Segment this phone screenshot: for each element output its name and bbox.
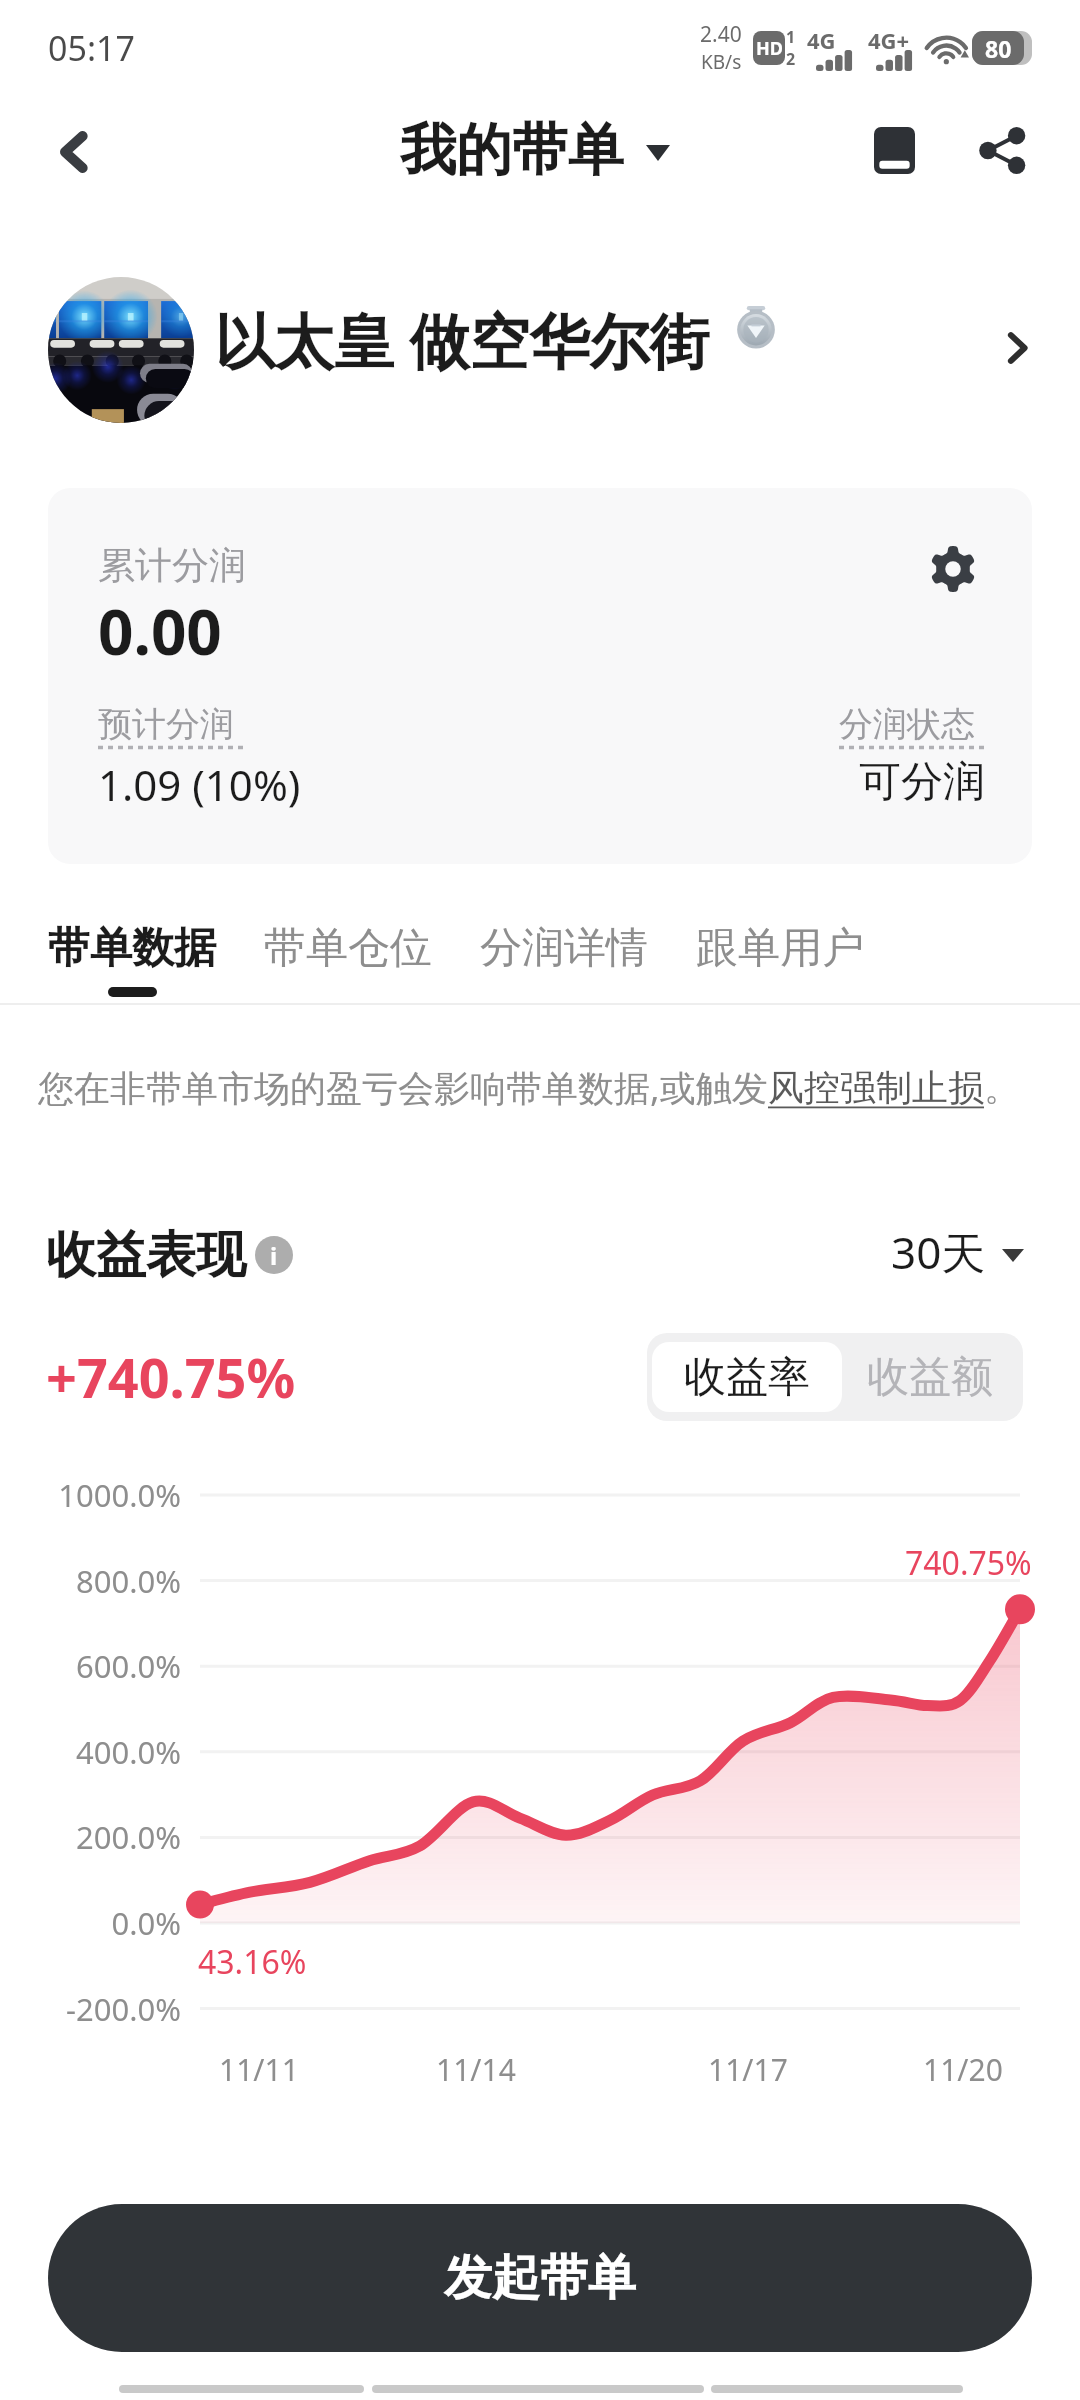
button[interactable]: 分润详情: [476, 922, 652, 997]
staticText: 05:17: [48, 25, 135, 71]
staticText: 0.00: [98, 589, 222, 673]
staticText: 740.75%: [905, 1541, 1032, 1585]
button[interactable]: 收益额: [842, 1342, 1018, 1412]
staticText: 收益率: [684, 1351, 810, 1404]
staticText: 累计分润: [98, 542, 246, 589]
staticText: 4G: [807, 25, 836, 55]
button[interactable]: Notes: [852, 108, 936, 192]
staticText: KB/s: [701, 49, 742, 75]
staticText: 80: [985, 33, 1012, 64]
staticText: HD: [756, 36, 783, 61]
button[interactable]: Settings: [907, 523, 999, 615]
staticText: 2.40: [700, 20, 742, 49]
staticText: 以太皇 做空华尔街: [214, 299, 710, 381]
button[interactable]: Open trader profile: [987, 318, 1047, 378]
staticText: 1000.0%: [0, 1474, 181, 1516]
staticText: 分润详情: [480, 922, 648, 975]
staticText: -200.0%: [0, 1988, 181, 2030]
staticText: 2: [786, 48, 796, 70]
staticText: 11/11: [219, 2049, 299, 2090]
button[interactable]: 发起带单: [48, 2204, 1032, 2352]
button[interactable]: 带单数据: [44, 922, 220, 997]
staticText: 11/14: [436, 2049, 516, 2090]
staticText: 带单数据: [48, 922, 216, 975]
staticText: 您在非带单市场的盈亏会影响带单数据,或触发: [38, 1063, 768, 1112]
button[interactable]: Back: [30, 108, 114, 192]
staticText: 4G+: [868, 25, 910, 55]
staticText: 0.0%: [0, 1902, 181, 1944]
button[interactable]: Info: [255, 1236, 293, 1274]
staticText: 收益表现: [46, 1224, 246, 1287]
button[interactable]: 风控强制止损: [768, 1065, 984, 1110]
button[interactable]: 30天: [891, 1210, 1024, 1294]
button[interactable]: 以太皇 做空华尔街: [0, 240, 1080, 440]
staticText: 11/17: [708, 2049, 788, 2090]
staticText: 收益额: [867, 1351, 993, 1404]
button[interactable]: Share: [960, 108, 1044, 192]
staticText: 11/20: [923, 2049, 1003, 2090]
button[interactable]: 收益率: [652, 1342, 842, 1412]
staticText: 400.0%: [0, 1731, 181, 1773]
button[interactable]: 带单仓位: [260, 922, 436, 997]
staticText: 1.09 (10%): [98, 756, 301, 813]
staticText: 43.16%: [198, 1940, 307, 1984]
staticText: 可分润: [859, 756, 985, 809]
button[interactable]: 跟单用户: [692, 922, 868, 997]
staticText: 分润状态: [839, 703, 975, 746]
staticText: +740.75%: [46, 1340, 296, 1414]
staticText: 发起带单: [444, 2248, 636, 2308]
staticText: 800.0%: [0, 1560, 181, 1602]
staticText: 预计分润: [98, 703, 234, 746]
staticText: 200.0%: [0, 1816, 181, 1858]
staticText: 。: [984, 1065, 1020, 1110]
staticText: 带单仓位: [264, 922, 432, 975]
staticText: 跟单用户: [696, 922, 864, 975]
staticText: 30天: [891, 1222, 986, 1282]
staticText: 我的带单: [400, 115, 624, 186]
button[interactable]: 我的带单: [400, 101, 670, 200]
staticText: 1: [786, 26, 796, 48]
staticText: i: [270, 1239, 278, 1272]
staticText: 600.0%: [0, 1645, 181, 1687]
